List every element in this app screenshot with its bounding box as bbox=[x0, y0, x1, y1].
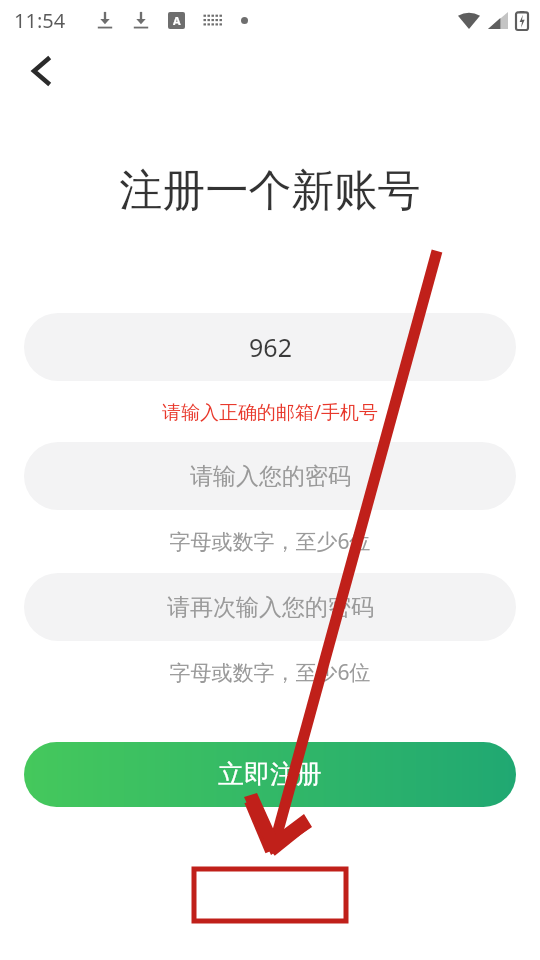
staticText: 请输入正确的邮箱/手机号 bbox=[0, 399, 540, 425]
staticText: 字母或数字，至少6位 bbox=[0, 658, 540, 687]
staticText: 立即注册 bbox=[218, 758, 322, 791]
staticText: A bbox=[173, 13, 181, 28]
button[interactable]: 请再次输入您的密码 bbox=[24, 573, 516, 641]
staticText: 962 bbox=[249, 330, 292, 364]
staticText: 字母或数字，至少6位 bbox=[0, 527, 540, 556]
staticText: 请输入您的密码 bbox=[190, 462, 351, 491]
button[interactable]: 立即注册 bbox=[24, 742, 516, 807]
button[interactable]: Back bbox=[18, 48, 64, 94]
staticText: 注册一个新账号 bbox=[0, 164, 540, 218]
staticText: 请再次输入您的密码 bbox=[167, 593, 374, 622]
staticText: 11:54 bbox=[14, 7, 66, 34]
button[interactable]: 请输入您的密码 bbox=[24, 442, 516, 510]
button[interactable]: 962 bbox=[24, 313, 516, 381]
